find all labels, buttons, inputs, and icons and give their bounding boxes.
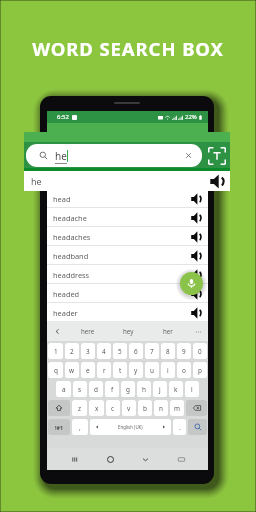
- staticText: 8: [166, 347, 170, 356]
- button[interactable]: e: [81, 362, 95, 378]
- button[interactable]: k: [169, 381, 183, 397]
- staticText: n: [159, 404, 163, 413]
- staticText: q: [54, 366, 58, 375]
- staticText: hey: [123, 327, 134, 335]
- button[interactable]: 7: [145, 343, 159, 359]
- staticText: w: [69, 366, 75, 375]
- button[interactable]: g: [121, 381, 135, 397]
- button[interactable]: q: [48, 362, 63, 378]
- button[interactable]: n: [154, 400, 168, 416]
- button[interactable]: Search: [188, 419, 207, 435]
- button[interactable]: c: [106, 400, 120, 416]
- button[interactable]: here: [67, 321, 108, 341]
- button[interactable]: ,: [72, 419, 88, 435]
- staticText: j: [159, 385, 161, 394]
- button[interactable]: v: [122, 400, 136, 416]
- staticText: English (UK): [118, 424, 143, 430]
- button[interactable]: 0: [193, 343, 207, 359]
- button[interactable]: s: [73, 381, 87, 397]
- button[interactable]: her: [148, 321, 188, 341]
- button[interactable]: headed: [47, 284, 208, 303]
- button[interactable]: 3: [81, 343, 95, 359]
- button[interactable]: 4: [97, 343, 111, 359]
- button[interactable]: z: [72, 400, 87, 416]
- button[interactable]: More: [188, 321, 208, 341]
- button[interactable]: Recents: [65, 450, 83, 468]
- staticText: headache: [53, 213, 87, 223]
- button[interactable]: l: [185, 381, 199, 397]
- button[interactable]: Voice search: [180, 272, 203, 295]
- staticText: f: [111, 385, 114, 394]
- staticText: p: [198, 366, 202, 375]
- button[interactable]: headband: [47, 246, 208, 265]
- button[interactable]: 6: [129, 343, 143, 359]
- staticText: v: [127, 404, 131, 413]
- button[interactable]: Scan text: [207, 146, 227, 166]
- button[interactable]: t: [113, 362, 127, 378]
- staticText: 6: [134, 347, 138, 356]
- button[interactable]: hey: [108, 321, 148, 341]
- staticText: 7: [150, 347, 154, 356]
- button[interactable]: d: [89, 381, 103, 397]
- staticText: b: [143, 404, 147, 413]
- staticText: headaches: [53, 232, 91, 242]
- button[interactable]: 2: [65, 343, 79, 359]
- button[interactable]: r: [97, 362, 111, 378]
- button[interactable]: Hide keyboard: [172, 450, 190, 468]
- button[interactable]: header: [47, 303, 208, 322]
- button[interactable]: w: [65, 362, 79, 378]
- button[interactable]: !#1: [48, 419, 70, 435]
- staticText: !#1: [55, 424, 64, 431]
- button[interactable]: h: [137, 381, 151, 397]
- button[interactable]: 5: [113, 343, 127, 359]
- staticText: 2: [70, 347, 74, 356]
- button[interactable]: x: [89, 400, 104, 416]
- staticText: z: [78, 404, 82, 413]
- button[interactable]: 1: [48, 343, 63, 359]
- button[interactable]: English (UK): [90, 419, 171, 435]
- staticText: s: [78, 385, 82, 394]
- button[interactable]: f: [105, 381, 119, 397]
- button[interactable]: headache: [47, 208, 208, 227]
- button[interactable]: 8: [161, 343, 175, 359]
- button[interactable]: headaches: [47, 227, 208, 246]
- button[interactable]: j: [153, 381, 167, 397]
- button[interactable]: u: [145, 362, 159, 378]
- button[interactable]: Backspace: [186, 400, 207, 416]
- staticText: 1: [54, 347, 58, 356]
- button[interactable]: .: [173, 419, 186, 435]
- staticText: ,: [79, 423, 81, 432]
- staticText: e: [86, 366, 90, 375]
- button[interactable]: Shift: [48, 400, 70, 416]
- button[interactable]: headdress: [47, 265, 208, 284]
- button[interactable]: m: [170, 400, 184, 416]
- staticText: 0: [198, 347, 202, 356]
- staticText: her: [163, 327, 173, 335]
- staticText: d: [94, 385, 98, 394]
- staticText: y: [134, 366, 138, 375]
- staticText: header: [53, 308, 78, 318]
- staticText: 4: [102, 347, 106, 356]
- button[interactable]: i: [161, 362, 175, 378]
- button[interactable]: y: [129, 362, 143, 378]
- staticText: c: [111, 404, 115, 413]
- button[interactable]: p: [193, 362, 207, 378]
- staticText: x: [95, 404, 99, 413]
- button[interactable]: Home: [101, 450, 119, 468]
- button[interactable]: b: [138, 400, 152, 416]
- staticText: he: [55, 149, 67, 163]
- button[interactable]: o: [177, 362, 191, 378]
- button[interactable]: a: [56, 381, 71, 397]
- staticText: .: [179, 423, 181, 432]
- staticText: k: [174, 385, 178, 394]
- button[interactable]: head: [47, 189, 208, 208]
- staticText: t: [119, 366, 122, 375]
- staticText: l: [191, 385, 193, 394]
- staticText: 3: [86, 347, 90, 356]
- staticText: u: [150, 366, 154, 375]
- button[interactable]: Back: [136, 450, 154, 468]
- button[interactable]: 9: [177, 343, 191, 359]
- button[interactable]: he: [26, 144, 202, 167]
- staticText: h: [142, 385, 146, 394]
- button[interactable]: Previous: [47, 321, 67, 341]
